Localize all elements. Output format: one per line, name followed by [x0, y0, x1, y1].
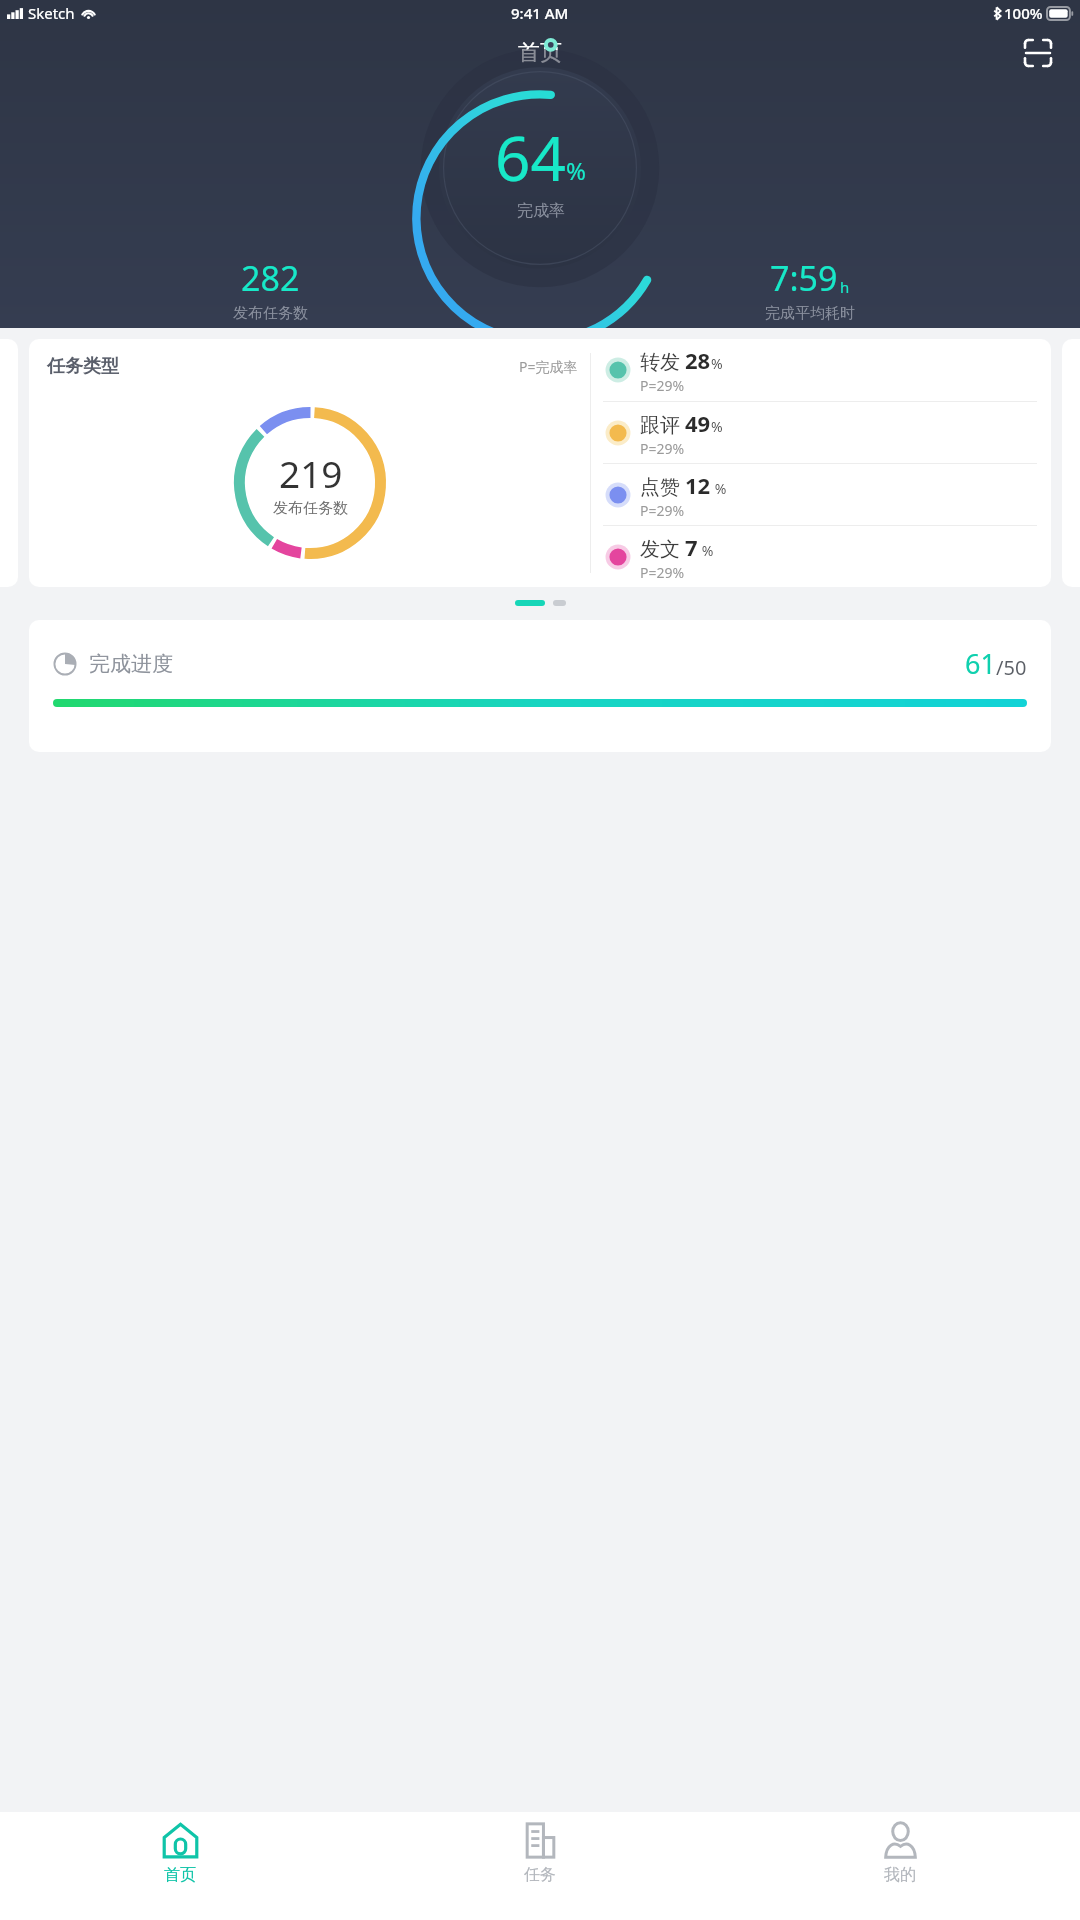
staticText: 首页	[518, 39, 562, 67]
staticText: 发布任务数	[233, 304, 308, 323]
staticText: 转发	[640, 350, 680, 375]
staticText: 任务	[524, 1865, 556, 1885]
staticText: 发布任务数	[273, 499, 348, 518]
button[interactable]: 我的	[720, 1822, 1080, 1920]
staticText: P=29%	[640, 501, 685, 520]
staticText: /50	[996, 654, 1027, 681]
staticText: %	[698, 541, 714, 560]
button[interactable]: Scan QR code	[1016, 31, 1060, 75]
staticText: 跟评	[640, 413, 680, 438]
button[interactable]: 首页	[0, 1822, 360, 1920]
staticText: 我的	[884, 1865, 916, 1885]
staticText: 首页	[164, 1865, 196, 1885]
staticText: 49	[685, 408, 711, 438]
staticText: 点赞	[640, 475, 680, 500]
staticText: P=29%	[640, 439, 685, 458]
staticText: 12	[685, 470, 711, 500]
staticText: 219	[279, 448, 343, 498]
staticText: %	[711, 354, 723, 373]
button[interactable]: 跟评	[591, 402, 1051, 463]
staticText: %	[711, 479, 727, 498]
staticText: %	[566, 154, 586, 187]
staticText: P=完成率	[519, 357, 578, 376]
staticText: 100%	[1004, 3, 1043, 23]
staticText: 282	[241, 255, 300, 301]
staticText: 完成进度	[89, 651, 173, 677]
staticText: 28	[685, 345, 711, 375]
button[interactable]: 任务	[360, 1822, 720, 1920]
staticText: %	[711, 417, 723, 436]
staticText: 发文	[640, 537, 680, 562]
staticText: 7:59	[770, 255, 838, 301]
staticText: 64	[495, 115, 566, 199]
button[interactable]: Page 1	[515, 600, 545, 606]
staticText: h	[840, 277, 850, 297]
button[interactable]: 发文	[591, 526, 1051, 587]
staticText: 61	[965, 645, 996, 682]
staticText: Sketch	[28, 3, 75, 23]
button[interactable]: 完成进度	[29, 620, 1051, 752]
staticText: 9:41 AM	[511, 3, 569, 23]
staticText: 完成率	[517, 201, 565, 221]
staticText: 任务类型	[47, 355, 119, 378]
button[interactable]: 任务类型	[29, 339, 1051, 587]
staticText: P=29%	[640, 563, 685, 582]
button[interactable]: 转发	[591, 339, 1051, 401]
button[interactable]: 点赞	[591, 464, 1051, 525]
button[interactable]: Page 2	[553, 600, 566, 606]
staticText: P=29%	[640, 376, 685, 395]
staticText: 7	[685, 532, 698, 562]
staticText: 完成平均耗时	[765, 304, 855, 323]
